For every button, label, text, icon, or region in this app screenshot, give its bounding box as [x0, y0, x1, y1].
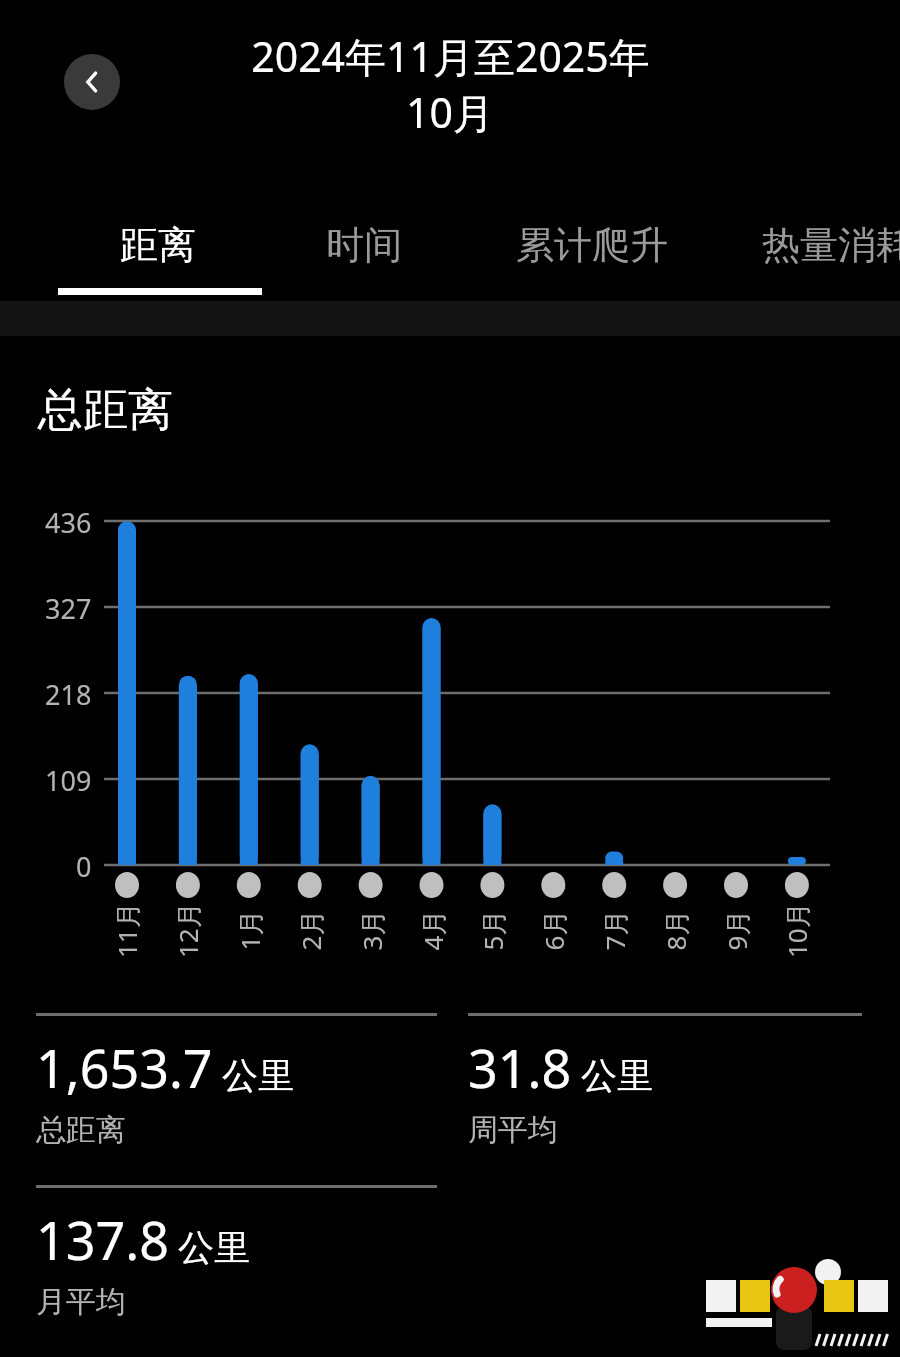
button[interactable]: 时间	[324, 205, 404, 285]
staticText: 1月	[231, 909, 267, 950]
staticText: 总距离	[38, 382, 173, 439]
staticText: 137.8	[36, 1204, 169, 1275]
staticText: 8月	[657, 909, 693, 950]
staticText: 2024年11月至2025年	[251, 28, 650, 84]
staticText: 2月	[292, 909, 328, 950]
staticText: 6月	[535, 909, 571, 950]
staticText: 327	[45, 590, 92, 627]
staticText: 11月	[109, 902, 145, 958]
staticText: 公里	[178, 1225, 250, 1270]
staticText: 9月	[718, 909, 754, 950]
staticText: 4月	[414, 909, 450, 950]
button[interactable]: 距离	[118, 205, 198, 285]
staticText: 436	[45, 504, 92, 541]
staticText: 累计爬升	[516, 221, 668, 269]
staticText: 7月	[596, 909, 632, 950]
staticText: 月平均	[36, 1283, 126, 1321]
staticText: 10月	[779, 902, 815, 958]
staticText: 1,653.7	[36, 1032, 213, 1103]
staticText: 31.8	[468, 1032, 572, 1103]
staticText: 热量消耗	[762, 221, 900, 269]
button[interactable]: 热量消耗	[758, 205, 900, 285]
staticText: 218	[45, 676, 92, 713]
staticText: 公里	[222, 1053, 294, 1098]
button[interactable]: 累计爬升	[512, 205, 672, 285]
staticText: 时间	[326, 221, 402, 269]
staticText: 12月	[170, 902, 206, 958]
staticText: 109	[45, 762, 92, 799]
staticText: 总距离	[36, 1111, 126, 1149]
staticText: 0	[76, 848, 92, 885]
staticText: 公里	[581, 1053, 653, 1098]
staticText: 距离	[120, 221, 196, 269]
staticText: 5月	[474, 909, 510, 950]
staticText: 10月	[406, 84, 494, 140]
staticText: 3月	[353, 909, 389, 950]
staticText: 周平均	[468, 1111, 558, 1149]
button[interactable]: Back	[64, 54, 120, 110]
